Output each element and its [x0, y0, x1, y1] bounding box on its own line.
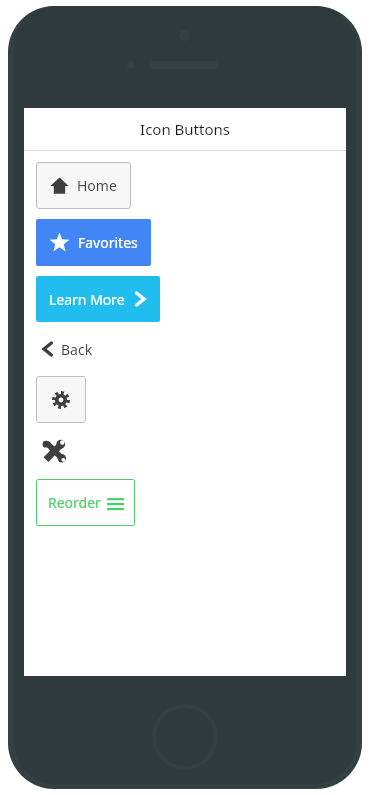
button[interactable]: Settings: [36, 376, 86, 423]
staticText: Learn More: [49, 290, 125, 309]
button[interactable]: Reorder: [36, 479, 135, 526]
staticText: Home: [77, 176, 117, 195]
button[interactable]: Learn More: [36, 276, 160, 322]
staticText: Reorder: [48, 493, 101, 512]
button[interactable]: Back: [36, 334, 95, 364]
staticText: Icon Buttons: [140, 119, 230, 139]
staticText: Back: [61, 340, 93, 359]
button[interactable]: Favorites: [36, 219, 151, 266]
staticText: Favorites: [78, 233, 138, 252]
button[interactable]: Tools: [36, 434, 76, 468]
button[interactable]: Home: [36, 162, 131, 209]
